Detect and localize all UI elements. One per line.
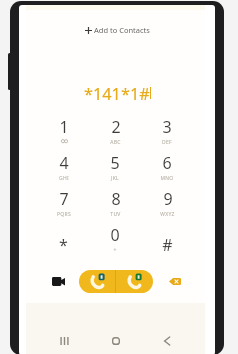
button[interactable]: 7	[38, 187, 89, 223]
button[interactable]: 4	[38, 151, 89, 187]
button[interactable]: Back	[158, 332, 176, 350]
button[interactable]: Video call	[49, 272, 67, 290]
staticText: 0	[110, 224, 120, 246]
button[interactable]: Backspace	[166, 272, 184, 290]
button[interactable]: Add to Contacts	[28, 25, 207, 35]
staticText: 6	[162, 152, 172, 174]
staticText: 4	[59, 152, 69, 174]
staticText: JKL	[111, 175, 119, 182]
button[interactable]: Call with SIM 2	[116, 270, 153, 293]
staticText: ABC	[110, 139, 121, 146]
staticText: PQRS	[57, 211, 71, 218]
staticText: *141*1#	[84, 83, 150, 105]
staticText: *	[59, 234, 68, 256]
button[interactable]: 5	[89, 151, 141, 187]
button[interactable]: 0	[89, 223, 141, 259]
button[interactable]: Call with SIM 1	[79, 270, 115, 293]
staticText: +	[113, 247, 117, 254]
staticText: TUV	[110, 211, 121, 218]
button[interactable]: Home	[107, 332, 125, 350]
staticText: WXYZ	[160, 211, 175, 218]
staticText: 2	[111, 116, 121, 138]
staticText: #	[162, 234, 173, 256]
button[interactable]: #	[141, 223, 193, 259]
staticText: 9	[163, 188, 173, 210]
button[interactable]: 3	[141, 115, 193, 151]
staticText: 5	[110, 152, 120, 174]
staticText: DEF	[162, 139, 172, 146]
staticText: 8	[111, 188, 121, 210]
button[interactable]: Recents	[55, 332, 73, 350]
button[interactable]: 2	[89, 115, 141, 151]
button[interactable]: 9	[141, 187, 193, 223]
staticText: 7	[59, 188, 69, 210]
staticText: GHI	[59, 175, 69, 182]
button[interactable]: *	[38, 223, 89, 259]
button[interactable]: 6	[141, 151, 193, 187]
button[interactable]: 1	[38, 115, 89, 151]
button[interactable]: 8	[89, 187, 141, 223]
staticText: MNO	[160, 175, 174, 182]
staticText: 1	[59, 116, 69, 138]
staticText: Add to Contacts	[94, 25, 150, 35]
staticText: 3	[162, 116, 172, 138]
